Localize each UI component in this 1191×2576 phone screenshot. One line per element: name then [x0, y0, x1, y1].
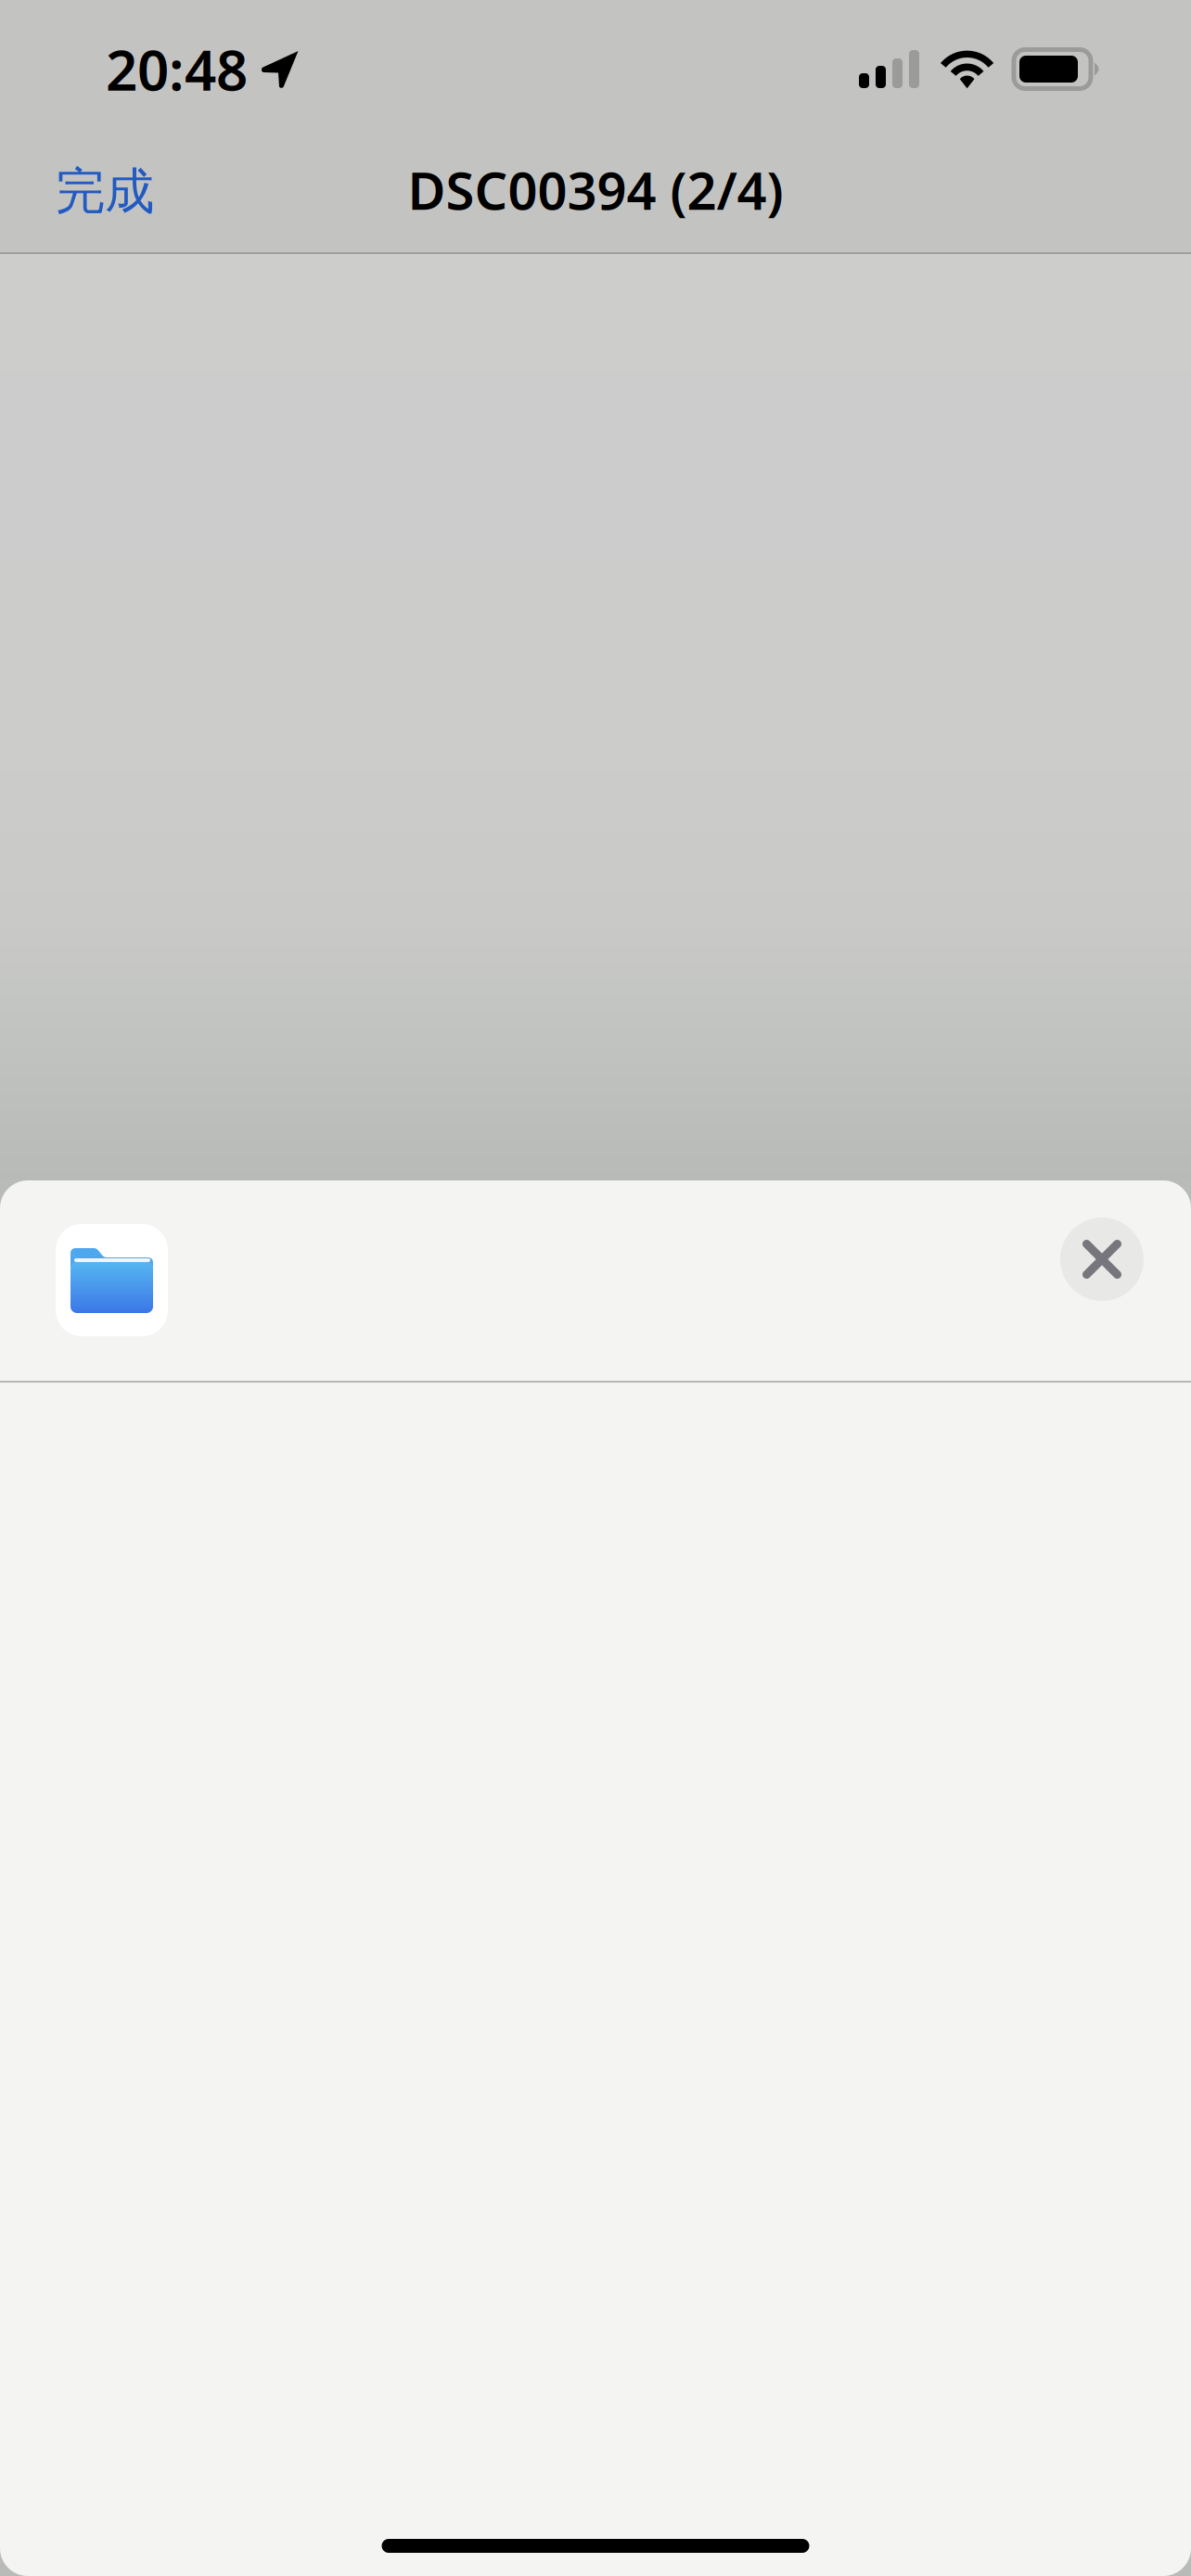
staticText: 完成 — [56, 161, 154, 222]
staticText: 20:48 — [106, 32, 248, 106]
button[interactable]: Close — [1060, 1218, 1144, 1301]
button[interactable]: 完成 — [0, 131, 191, 252]
staticText: DSC00394 (2/4) — [408, 155, 783, 224]
